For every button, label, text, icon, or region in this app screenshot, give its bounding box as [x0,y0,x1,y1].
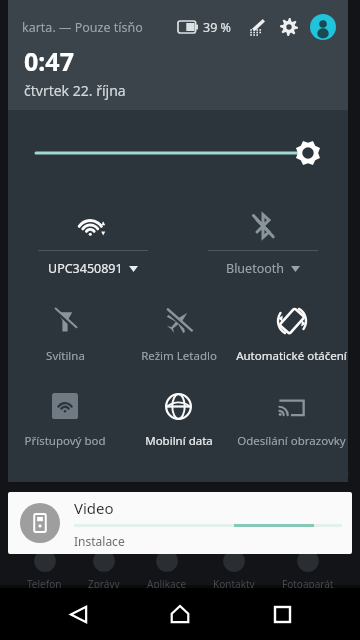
button[interactable]: Automatické otáčení [235,293,348,378]
staticText: Fotoaparát [282,577,334,591]
staticText: čtvrtek 22. října [24,81,126,100]
staticText: Instalace [74,533,125,549]
staticText: Video [74,498,114,518]
button[interactable]: Edit quick settings [244,15,268,39]
staticText: Zprávy [88,577,120,591]
staticText: karta. — Pouze tísňo [22,19,172,36]
button[interactable]: Brightness [8,110,348,195]
button[interactable]: Recents [258,590,306,638]
staticText: Automatické otáčení [236,348,347,364]
button[interactable]: Přístupový bod [8,378,122,463]
staticText: Mobilní data [145,433,213,449]
button[interactable]: Back [54,590,102,638]
staticText: 0:47 [24,44,74,78]
button[interactable]: Bluetooth [178,201,348,293]
staticText: Režim Letadlo [141,348,217,364]
staticText: Obchod Play [291,466,351,480]
button[interactable]: Odesílání obrazovky [235,378,348,463]
button[interactable]: User profile [310,14,336,40]
button[interactable]: Svítilna [8,293,122,378]
staticText: Aplikace [147,577,187,591]
button[interactable]: Settings [277,15,301,39]
staticText: 39 % [203,19,231,36]
staticText: Svítilna [46,348,85,364]
staticText: Přístupový bod [24,433,106,449]
staticText: Telefon [27,577,62,591]
button[interactable]: Mobilní data [122,378,235,463]
button[interactable]: Home [156,590,204,638]
staticText: Kontakty [213,577,255,591]
button[interactable]: UPC3450891 [8,201,178,293]
staticText: UPC3450891 [48,260,123,277]
staticText: Odesílání obrazovky [237,433,346,449]
button[interactable]: Video [8,492,352,554]
staticText: Bluetooth [226,260,285,277]
button[interactable]: Režim Letadlo [122,293,235,378]
